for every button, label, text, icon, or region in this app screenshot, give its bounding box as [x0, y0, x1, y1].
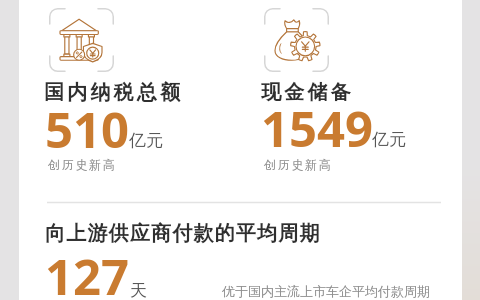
staticText: 优于国内主流上市车企平均付款周期: [222, 283, 430, 299]
staticText: 510: [45, 96, 130, 163]
button[interactable]: 国内纳税总额图标: [49, 8, 114, 72]
staticText: 向上游供应商付款的平均周期: [45, 221, 321, 246]
button[interactable]: 现金储备图标: [264, 8, 329, 72]
staticText: 创历史新高: [48, 157, 117, 172]
staticText: 创历史新高: [264, 157, 333, 172]
staticText: 天: [130, 280, 147, 300]
staticText: 1549: [261, 95, 374, 162]
staticText: 127: [45, 243, 130, 300]
staticText: 亿元: [129, 130, 163, 151]
staticText: 现金储备: [261, 80, 354, 105]
staticText: 国内纳税总额: [44, 80, 184, 105]
staticText: 亿元: [372, 129, 406, 150]
